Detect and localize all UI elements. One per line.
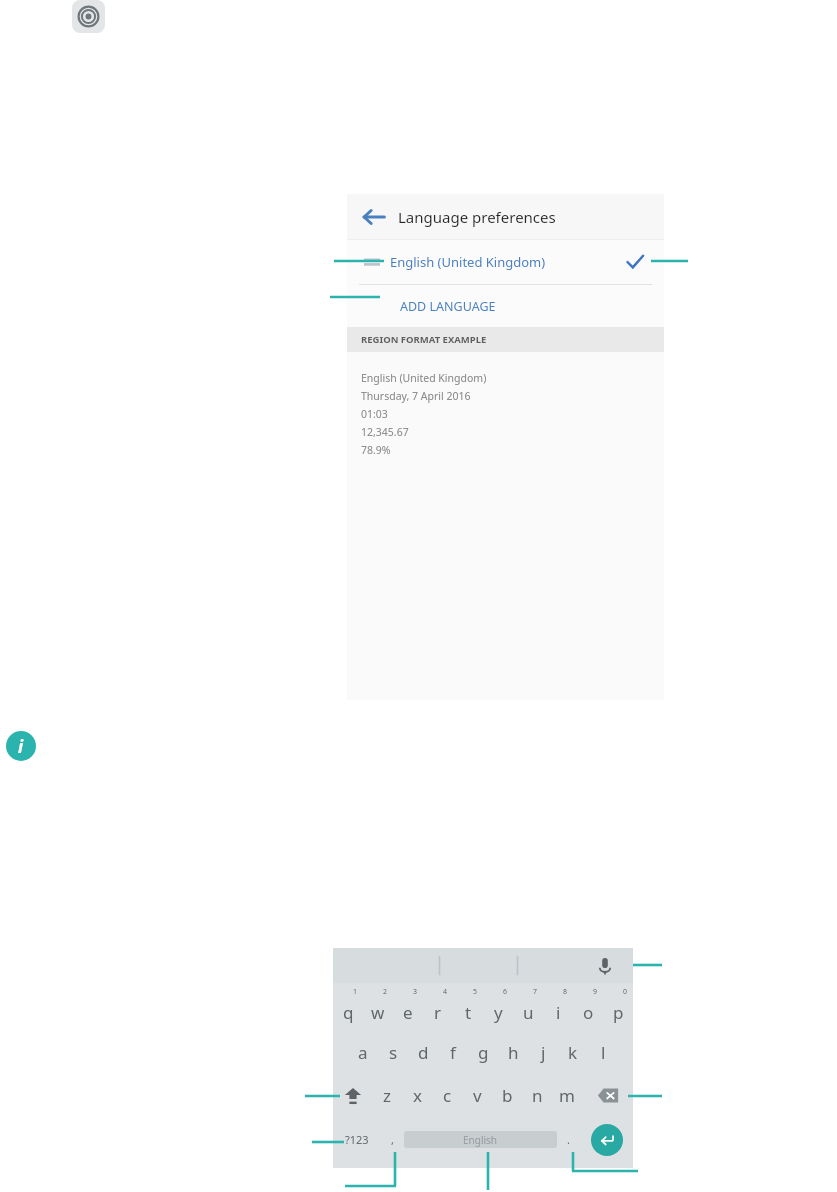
button[interactable]: 8	[543, 983, 573, 1031]
button[interactable]: ?123	[333, 1117, 381, 1162]
staticText: w	[371, 1001, 385, 1024]
staticText: REGION FORMAT EXAMPLE	[361, 333, 487, 346]
button[interactable]: l	[588, 1031, 618, 1074]
staticText: x	[413, 1084, 422, 1107]
staticText: 6	[503, 987, 508, 997]
button[interactable]: 5	[453, 983, 483, 1031]
button[interactable]: a	[348, 1031, 378, 1074]
button[interactable]: English	[404, 1131, 557, 1148]
button[interactable]: 2	[363, 983, 393, 1031]
staticText: m	[559, 1084, 575, 1107]
staticText: ?123	[345, 1132, 369, 1147]
staticText: a	[358, 1041, 368, 1064]
staticText: .	[567, 1132, 570, 1147]
button[interactable]: 0	[603, 983, 633, 1031]
staticText: i	[556, 1001, 561, 1024]
button[interactable]: 6	[483, 983, 513, 1031]
staticText: v	[473, 1084, 482, 1107]
button[interactable]: c	[432, 1074, 462, 1117]
staticText: English (United Kingdom)	[390, 253, 546, 271]
button[interactable]: Voice input	[595, 956, 615, 976]
staticText: n	[532, 1084, 543, 1107]
staticText: 5	[473, 987, 478, 997]
button[interactable]: Backspace	[582, 1074, 633, 1117]
staticText: p	[613, 1001, 624, 1024]
button[interactable]: Full stop	[557, 1117, 580, 1162]
button[interactable]: Shift	[333, 1074, 372, 1117]
staticText: j	[541, 1041, 546, 1064]
staticText: k	[568, 1041, 578, 1064]
staticText: q	[343, 1001, 354, 1024]
staticText: t	[465, 1001, 472, 1024]
button[interactable]: j	[528, 1031, 558, 1074]
staticText: Thursday, 7 April 2016	[361, 389, 471, 403]
staticText: g	[478, 1041, 489, 1064]
button[interactable]: k	[558, 1031, 588, 1074]
staticText: 9	[593, 987, 598, 997]
staticText: c	[443, 1084, 452, 1107]
button[interactable]: Comma	[381, 1117, 404, 1162]
button[interactable]: 3	[393, 983, 423, 1031]
staticText: 8	[563, 987, 568, 997]
button[interactable]: 7	[513, 983, 543, 1031]
staticText: 7	[533, 987, 538, 997]
staticText: English	[463, 1133, 498, 1147]
staticText: r	[434, 1001, 442, 1024]
button[interactable]: 9	[573, 983, 603, 1031]
staticText: 4	[443, 987, 448, 997]
staticText: 0	[623, 987, 628, 997]
button[interactable]: h	[498, 1031, 528, 1074]
staticText: s	[389, 1041, 398, 1064]
button[interactable]: ADD LANGUAGE	[347, 285, 664, 327]
button[interactable]: g	[468, 1031, 498, 1074]
staticText: 3	[413, 987, 418, 997]
staticText: 12,345.67	[361, 425, 409, 439]
button[interactable]: v	[462, 1074, 492, 1117]
staticText: English (United Kingdom)	[361, 371, 487, 385]
button[interactable]: English (United Kingdom)	[347, 240, 664, 284]
button[interactable]: z	[372, 1074, 402, 1117]
button[interactable]: f	[438, 1031, 468, 1074]
button[interactable]: m	[552, 1074, 582, 1117]
staticText: o	[583, 1001, 594, 1024]
staticText: ADD LANGUAGE	[400, 298, 496, 315]
button[interactable]: Settings	[72, 0, 105, 33]
staticText: 01:03	[361, 407, 388, 421]
button[interactable]: b	[492, 1074, 522, 1117]
staticText: 78.9%	[361, 443, 391, 457]
staticText: e	[403, 1001, 413, 1024]
staticText: 2	[383, 987, 388, 997]
staticText: ,	[391, 1132, 394, 1147]
staticText: b	[502, 1084, 513, 1107]
button[interactable]: x	[402, 1074, 432, 1117]
button[interactable]: Back	[361, 204, 387, 230]
button[interactable]: Enter	[580, 1117, 633, 1162]
button[interactable]: d	[408, 1031, 438, 1074]
button[interactable]: 1	[333, 983, 363, 1031]
staticText: z	[383, 1084, 391, 1107]
staticText: 1	[353, 987, 358, 997]
staticText: f	[450, 1041, 456, 1064]
button[interactable]: s	[378, 1031, 408, 1074]
button[interactable]: n	[522, 1074, 552, 1117]
button[interactable]: 4	[423, 983, 453, 1031]
staticText: y	[494, 1001, 503, 1024]
staticText: d	[418, 1041, 429, 1064]
staticText: u	[523, 1001, 534, 1024]
button[interactable]: Information	[6, 731, 36, 761]
staticText: Language preferences	[398, 207, 556, 227]
staticText: h	[508, 1041, 519, 1064]
staticText: l	[601, 1041, 606, 1064]
staticText: i	[18, 735, 24, 758]
